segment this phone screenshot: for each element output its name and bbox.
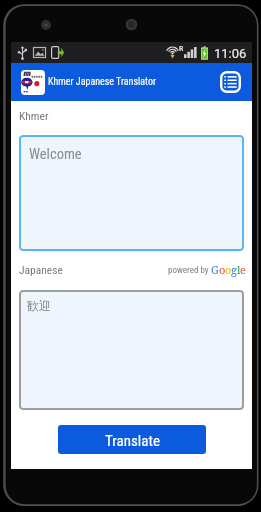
staticText: G <box>211 262 219 277</box>
staticText: R <box>179 44 184 53</box>
staticText: Translate <box>105 432 160 450</box>
staticText: 11:06 <box>214 46 247 61</box>
staticText: Welcome <box>29 146 82 163</box>
button[interactable]: 歓迎 <box>19 290 244 410</box>
button[interactable]: Welcome <box>19 135 244 251</box>
staticText: o <box>219 262 225 277</box>
button[interactable]: App icon <box>21 70 45 95</box>
staticText: Khmer <box>19 109 49 122</box>
staticText: 歓迎 <box>27 298 51 313</box>
staticText: Khmer Japanese Translator <box>48 76 156 88</box>
staticText: o <box>225 262 231 277</box>
staticText: l <box>237 262 240 277</box>
button[interactable]: Translate <box>58 425 206 454</box>
staticText: e <box>240 262 246 277</box>
button[interactable]: Menu <box>215 67 245 97</box>
staticText: Japanese <box>19 263 63 276</box>
staticText: powered by <box>168 265 211 276</box>
staticText: g <box>231 262 237 277</box>
